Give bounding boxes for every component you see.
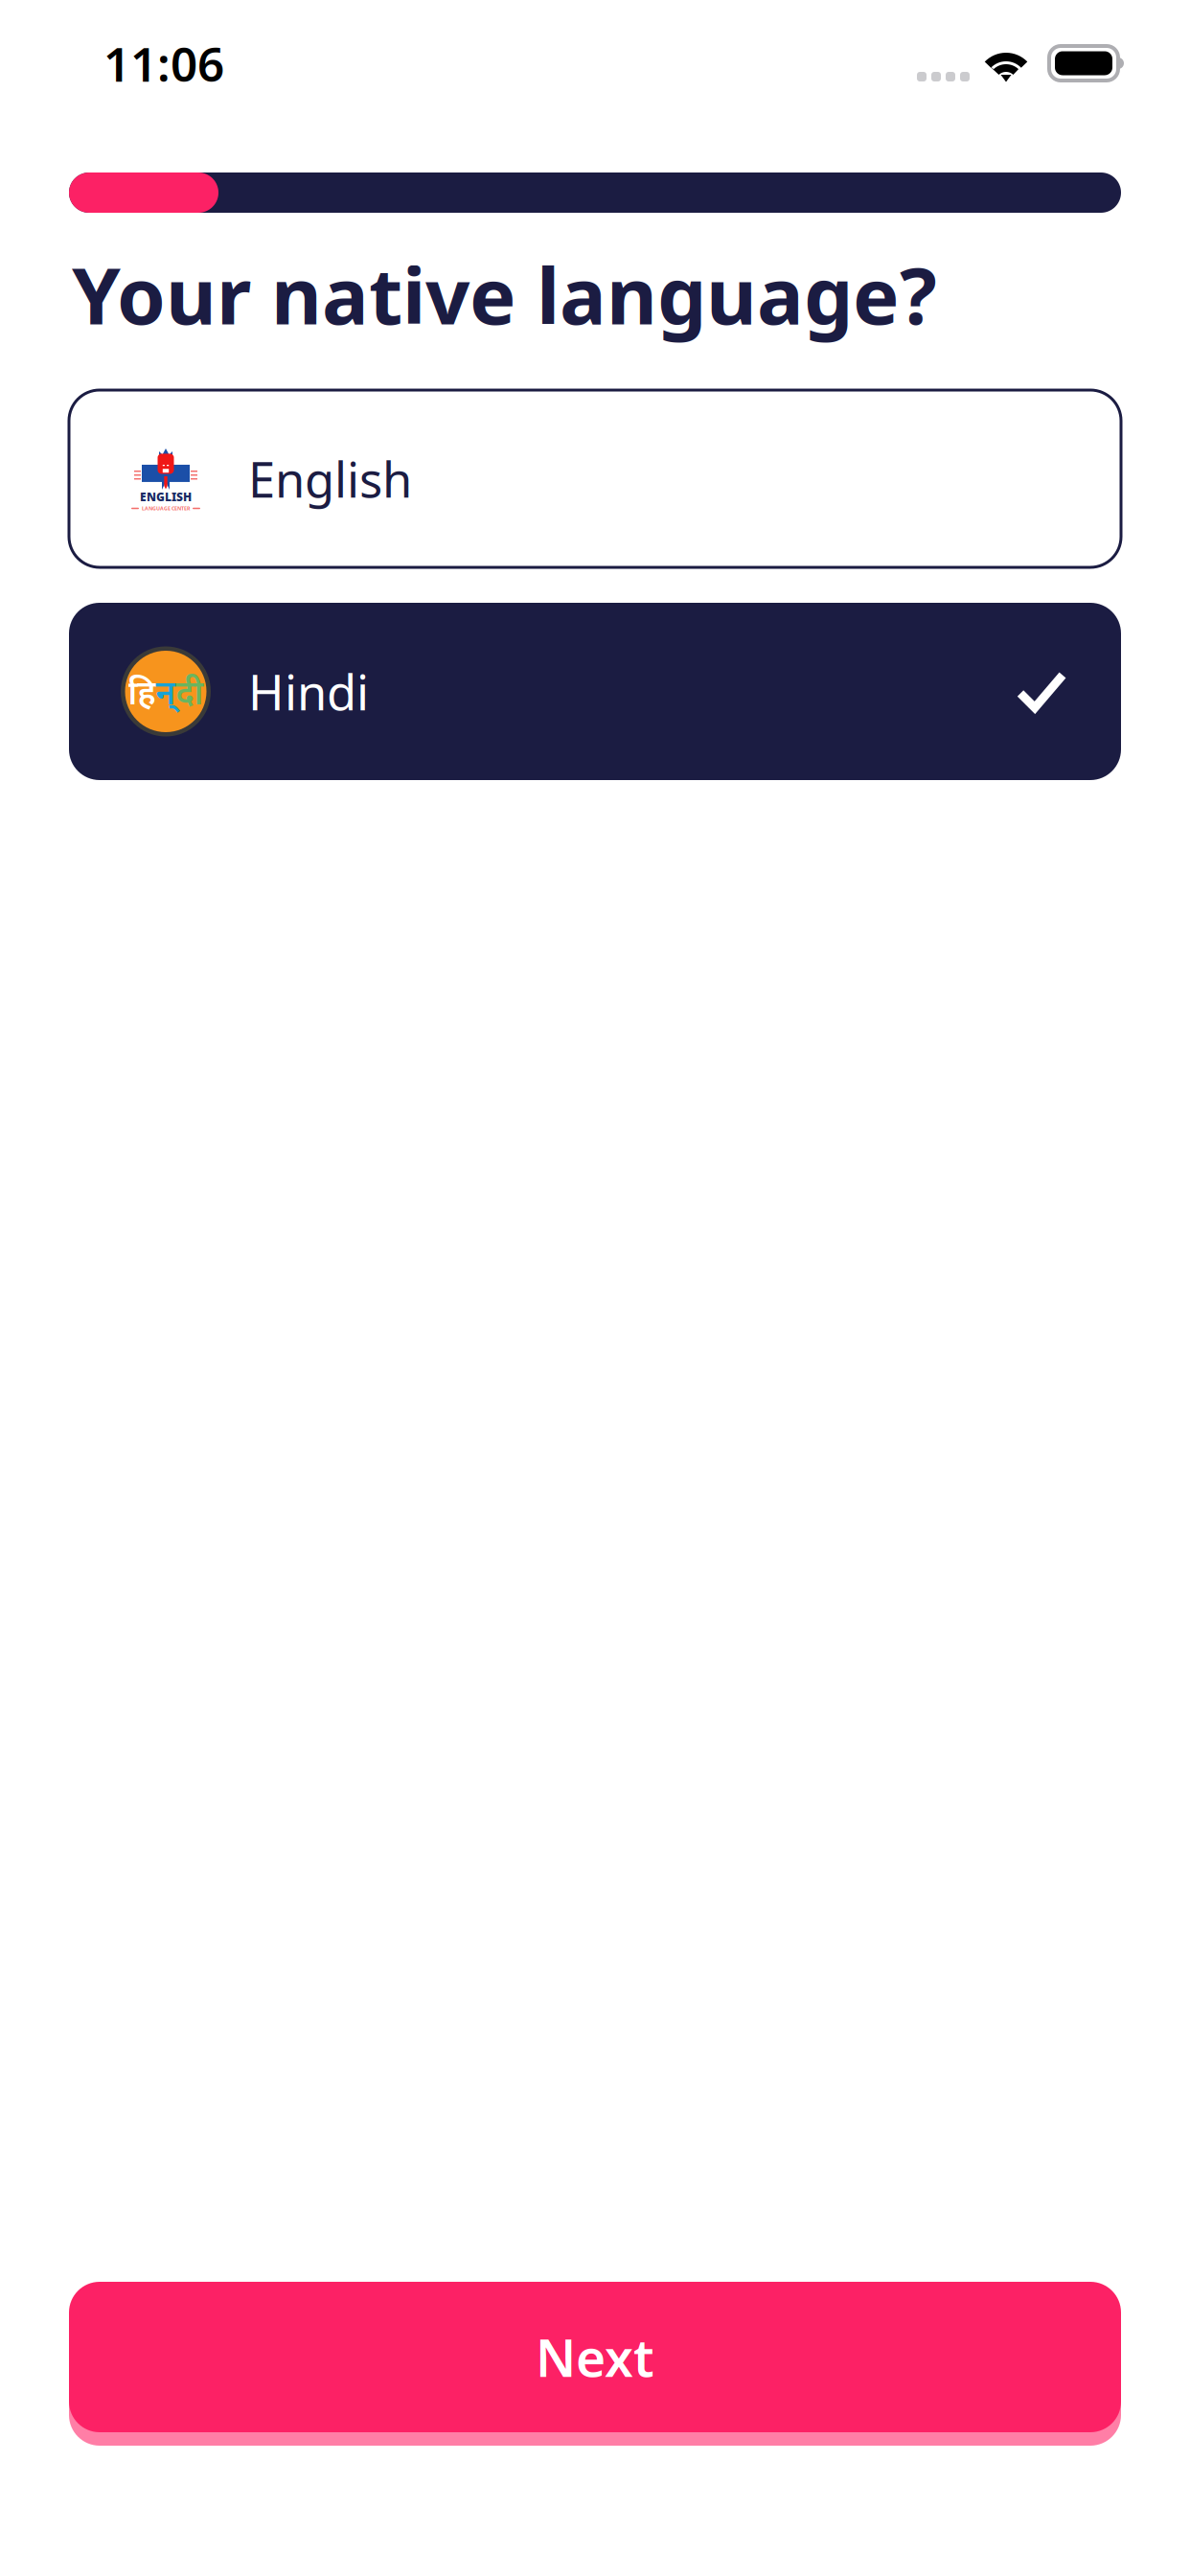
staticText: English	[248, 446, 412, 511]
staticText: Hindi	[248, 659, 369, 724]
button[interactable]: Selected	[69, 603, 1121, 780]
staticText: Next	[536, 2323, 654, 2391]
button[interactable]: Next	[69, 2282, 1121, 2446]
staticText: Your native language?	[72, 242, 937, 346]
button[interactable]: Not selected	[69, 390, 1121, 567]
staticText: 11:06	[103, 32, 224, 95]
